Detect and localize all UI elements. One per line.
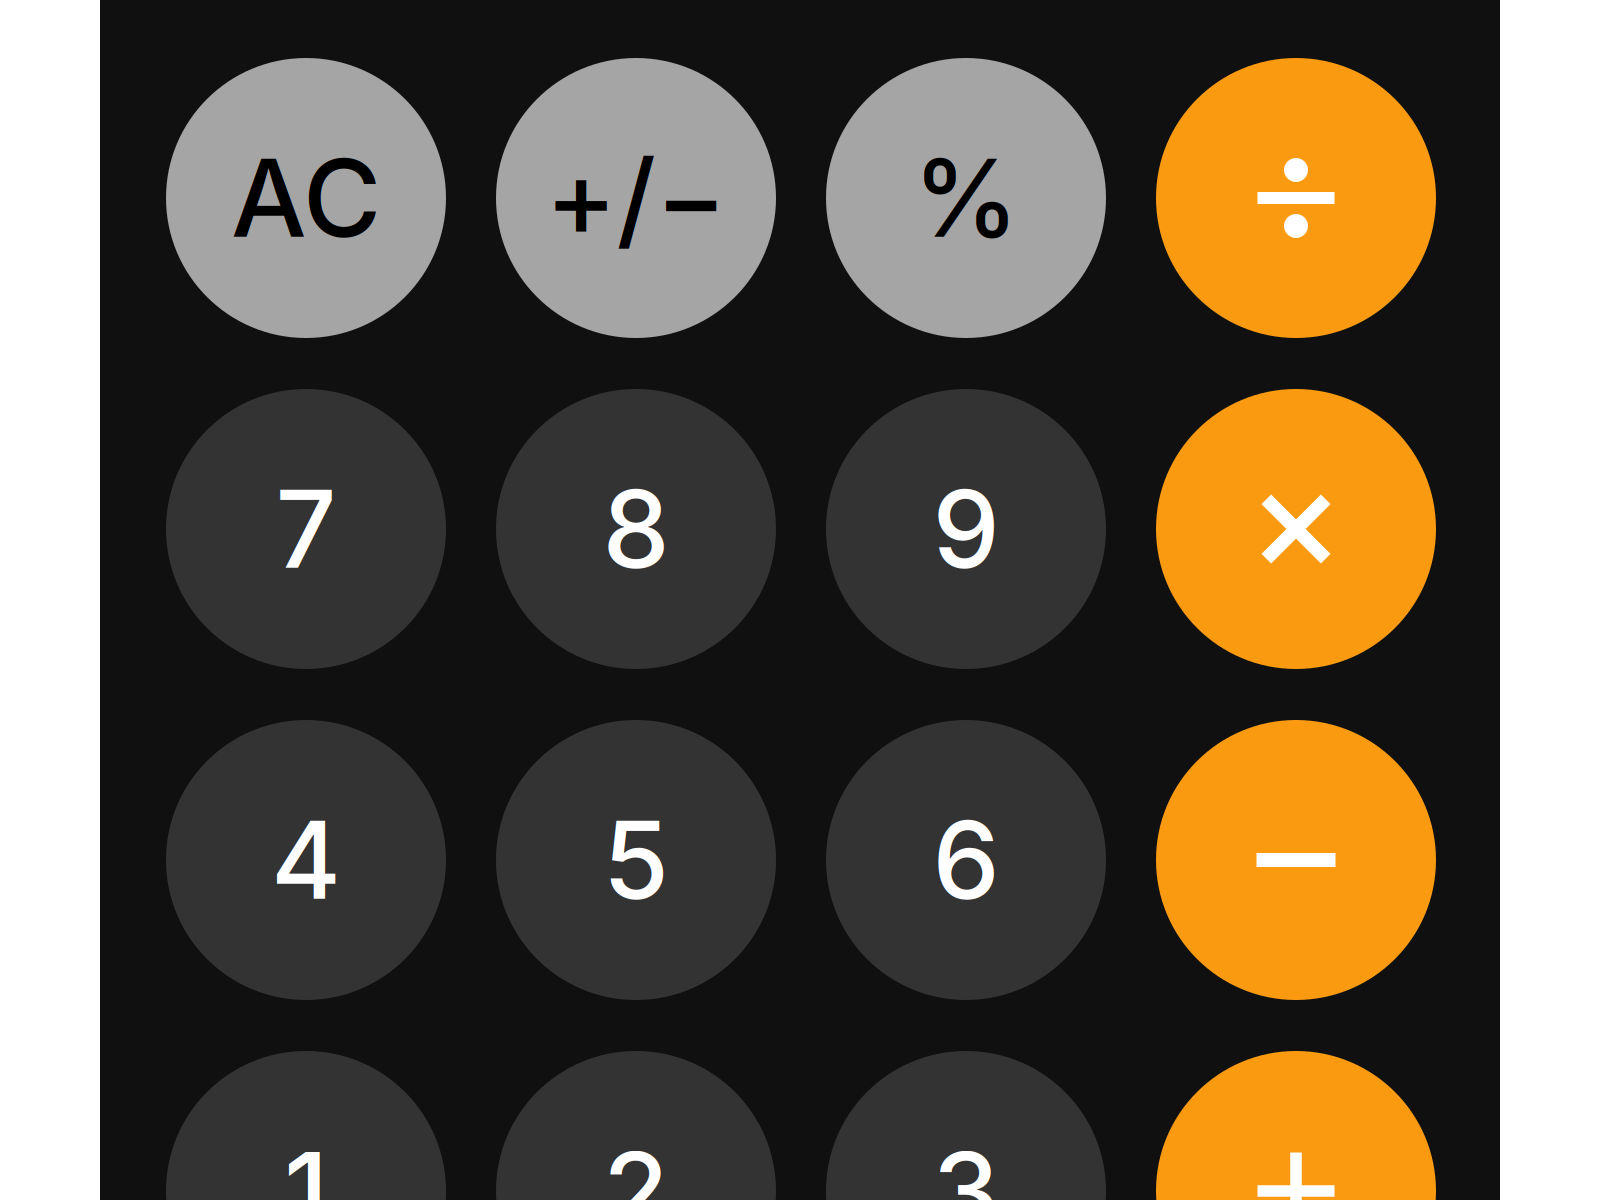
staticText: AC xyxy=(231,133,381,263)
staticText: 8 xyxy=(602,464,669,594)
button[interactable]: % xyxy=(826,58,1106,338)
button[interactable]: 1 xyxy=(166,1051,446,1200)
button[interactable]: 8 xyxy=(496,389,776,669)
staticText: +/− xyxy=(545,133,726,263)
staticText: 5 xyxy=(603,795,669,925)
button[interactable]: 2 xyxy=(496,1051,776,1200)
staticText: 3 xyxy=(932,1126,999,1200)
staticText: 7 xyxy=(275,464,336,594)
button[interactable]: AC xyxy=(166,58,446,338)
staticText: 9 xyxy=(932,464,999,594)
button[interactable]: 3 xyxy=(826,1051,1106,1200)
button[interactable]: 4 xyxy=(166,720,446,1000)
button[interactable]: +/− xyxy=(496,58,776,338)
staticText: 1 xyxy=(284,1126,328,1200)
button[interactable]: Add xyxy=(1156,1051,1436,1200)
button[interactable]: Divide xyxy=(1156,58,1436,338)
staticText: 4 xyxy=(271,795,341,925)
button[interactable]: 9 xyxy=(826,389,1106,669)
button[interactable]: Multiply xyxy=(1156,389,1436,669)
staticText: 6 xyxy=(932,795,999,925)
staticText: % xyxy=(913,133,1019,263)
staticText: 2 xyxy=(603,1126,669,1200)
button[interactable]: Subtract xyxy=(1156,720,1436,1000)
button[interactable]: 6 xyxy=(826,720,1106,1000)
button[interactable]: 7 xyxy=(166,389,446,669)
button[interactable]: 5 xyxy=(496,720,776,1000)
